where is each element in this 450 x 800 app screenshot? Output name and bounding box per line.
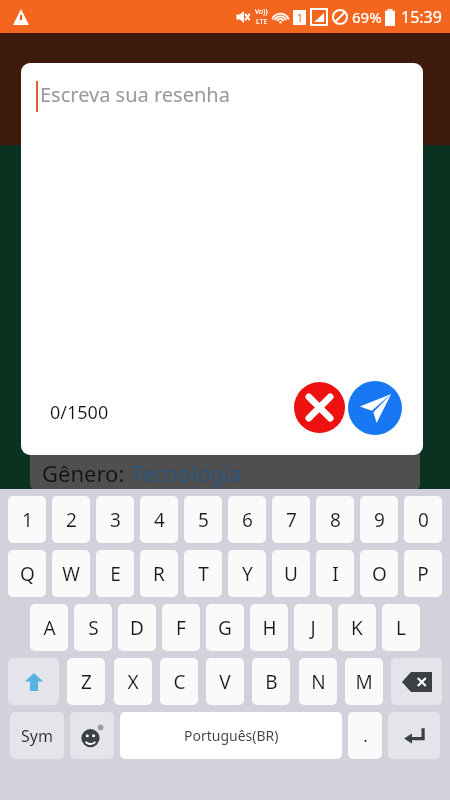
staticText: . <box>363 724 368 747</box>
staticText: 6 <box>242 507 253 533</box>
staticText: K <box>351 615 363 641</box>
staticText: A <box>43 615 56 641</box>
button[interactable]: 2 <box>52 496 90 543</box>
staticText: F <box>176 615 186 641</box>
button[interactable]: K <box>338 604 376 651</box>
staticText: L <box>396 615 406 641</box>
staticText: 15:39 <box>401 6 442 28</box>
staticText: W <box>62 561 80 587</box>
button[interactable]: B <box>252 658 290 705</box>
button[interactable]: P <box>404 550 442 597</box>
button[interactable]: O <box>360 550 398 597</box>
button[interactable]: F <box>162 604 200 651</box>
button[interactable]: Z <box>67 658 105 705</box>
button[interactable]: 4 <box>140 496 178 543</box>
button[interactable]: R <box>140 550 178 597</box>
button[interactable]: 6 <box>228 496 266 543</box>
staticText: 0/1500 <box>50 400 109 425</box>
button[interactable]: Y <box>228 550 266 597</box>
staticText: G <box>218 615 232 641</box>
staticText: I <box>332 561 339 587</box>
staticText: 69% <box>352 7 382 27</box>
staticText: 0 <box>418 507 429 533</box>
button[interactable]: . <box>348 712 382 759</box>
staticText: P <box>417 561 429 587</box>
button[interactable]: Cancelar <box>294 382 345 433</box>
button[interactable]: W <box>52 550 90 597</box>
button[interactable]: Menu <box>18 72 52 106</box>
staticText: C <box>173 669 186 695</box>
button[interactable]: 5 <box>184 496 222 543</box>
staticText: Vo)) <box>255 7 268 17</box>
button[interactable]: Key <box>391 658 442 705</box>
button[interactable]: V <box>206 658 244 705</box>
button[interactable]: Key <box>8 658 59 705</box>
staticText: Português(BR) <box>184 726 279 745</box>
button[interactable]: Key <box>388 712 440 759</box>
staticText: R <box>153 561 165 587</box>
staticText: 1 <box>297 11 303 25</box>
staticText: Z <box>81 669 92 695</box>
staticText: H <box>262 615 277 641</box>
staticText: M <box>355 669 373 695</box>
staticText: LTE <box>256 17 268 27</box>
button[interactable]: G <box>206 604 244 651</box>
staticText: V <box>219 669 231 695</box>
button[interactable]: H <box>250 604 288 651</box>
button[interactable]: 8 <box>316 496 354 543</box>
staticText: O <box>372 561 387 587</box>
button[interactable]: Enviar <box>348 381 402 435</box>
button[interactable]: D <box>118 604 156 651</box>
button[interactable]: 0 <box>404 496 442 543</box>
staticText: 4 <box>154 507 165 533</box>
staticText: 5 <box>198 507 209 533</box>
staticText: 3 <box>110 507 121 533</box>
button[interactable]: J <box>294 604 332 651</box>
staticText: Y <box>242 561 253 587</box>
button[interactable]: 1 <box>8 496 46 543</box>
button[interactable]: C <box>160 658 198 705</box>
button[interactable]: U <box>272 550 310 597</box>
staticText: 7 <box>286 507 297 533</box>
button[interactable]: L <box>382 604 420 651</box>
button[interactable]: 3 <box>96 496 134 543</box>
button[interactable]: I <box>316 550 354 597</box>
button[interactable]: T <box>184 550 222 597</box>
button[interactable]: M <box>345 658 383 705</box>
staticText: N <box>311 669 326 695</box>
button[interactable]: Key <box>70 712 114 759</box>
staticText: Gênero: <box>42 458 131 488</box>
staticText: J <box>310 615 316 641</box>
staticText: MEUS LIVROS <box>148 67 303 100</box>
staticText: E <box>110 561 121 587</box>
staticText: 2 <box>66 507 77 533</box>
button[interactable]: Sym <box>10 712 64 759</box>
button[interactable]: A <box>30 604 68 651</box>
button[interactable]: S <box>74 604 112 651</box>
staticText: Q <box>20 561 35 587</box>
staticText: Tecnologia <box>131 458 243 488</box>
staticText: 1 <box>22 507 33 533</box>
staticText: 8 <box>330 507 341 533</box>
button[interactable]: Português(BR) <box>120 712 342 759</box>
staticText: Sym <box>21 725 53 747</box>
staticText: U <box>284 561 298 587</box>
staticText: 9 <box>374 507 385 533</box>
button[interactable]: N <box>299 658 337 705</box>
button[interactable]: Q <box>8 550 46 597</box>
staticText: B <box>265 669 278 695</box>
staticText: D <box>130 615 144 641</box>
button[interactable]: 7 <box>272 496 310 543</box>
button[interactable]: E <box>96 550 134 597</box>
staticText: X <box>127 669 139 695</box>
button[interactable]: 9 <box>360 496 398 543</box>
button[interactable]: X <box>114 658 152 705</box>
staticText: T <box>198 561 209 587</box>
staticText: S <box>88 615 99 641</box>
button[interactable]: Escreva sua resenha <box>40 81 402 108</box>
